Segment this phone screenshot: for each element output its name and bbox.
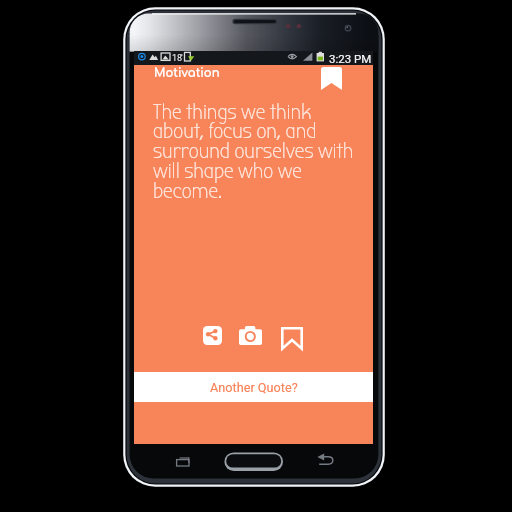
button[interactable]: Share <box>203 326 222 345</box>
staticText: Another Quote? <box>210 380 298 395</box>
staticText: 3:23 PM <box>329 52 372 65</box>
button[interactable]: Saved quotes <box>321 67 342 90</box>
staticText: The things we think about, focus on, and… <box>153 99 354 204</box>
button[interactable]: Another Quote? <box>134 372 373 402</box>
staticText: 18 <box>172 53 183 64</box>
button[interactable]: Save as image <box>239 326 262 345</box>
staticText: Motivation <box>154 67 220 80</box>
staticText: ° <box>180 52 183 61</box>
button[interactable]: Bookmark <box>281 327 303 350</box>
